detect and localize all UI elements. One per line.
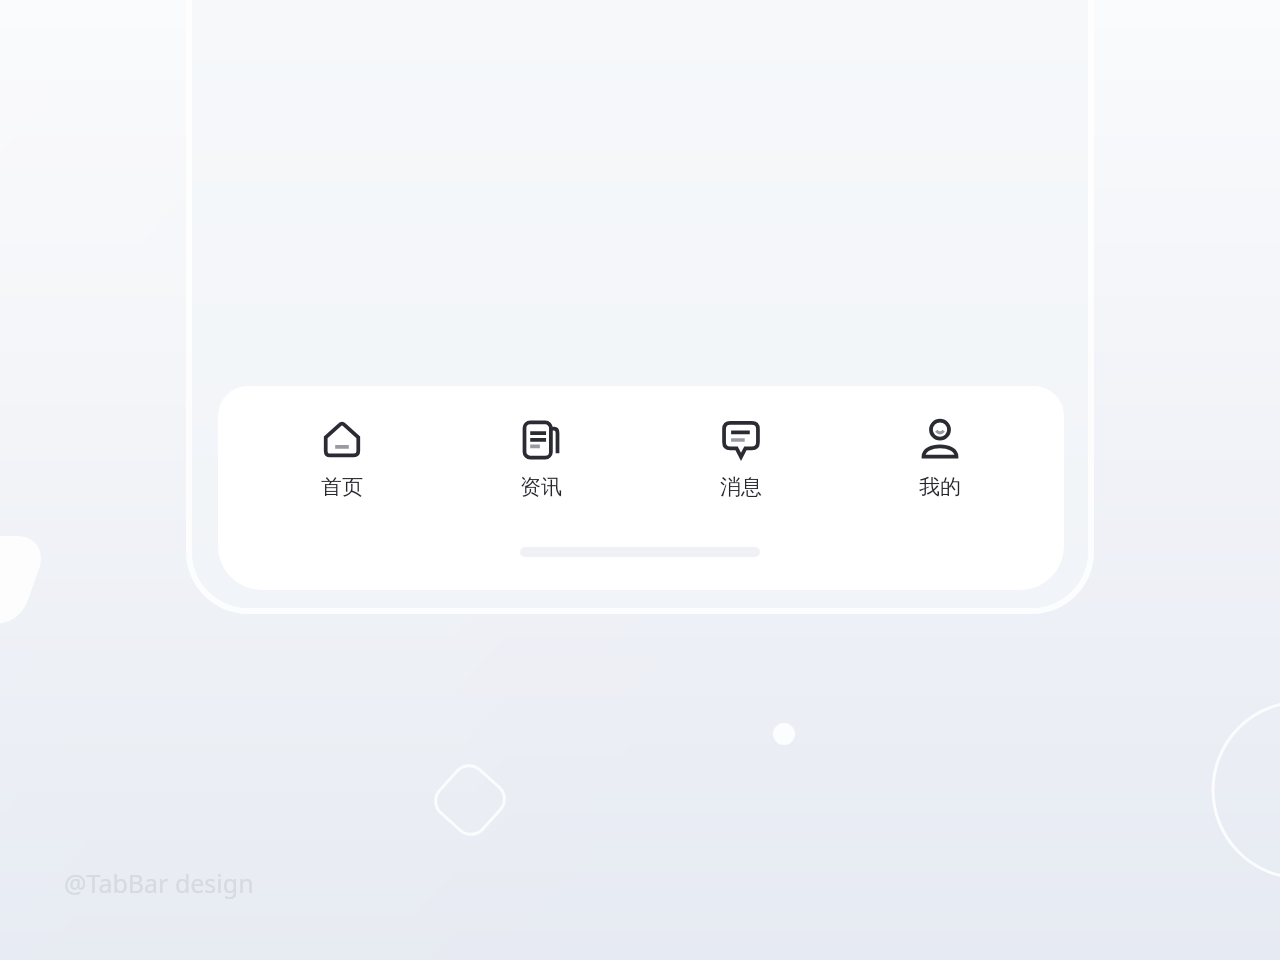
button[interactable]: 首页 (267, 416, 417, 502)
other: 资讯 (519, 418, 563, 462)
button[interactable]: 资讯 (466, 416, 616, 502)
button[interactable]: 消息 (666, 416, 816, 502)
other: 首页 (320, 418, 364, 462)
button[interactable]: 我的 (865, 416, 1015, 502)
staticText: 首页 (321, 474, 363, 500)
other: 消息 (719, 418, 763, 462)
staticText: 消息 (720, 474, 762, 500)
staticText: 资讯 (520, 474, 562, 500)
staticText: @TabBar design (64, 866, 254, 900)
other: 我的 (918, 418, 962, 462)
staticText: 我的 (919, 474, 961, 500)
